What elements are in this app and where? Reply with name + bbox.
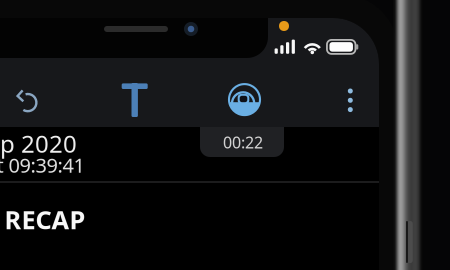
staticText: Sat 09:39:41	[0, 152, 84, 178]
button[interactable]: Undo	[0, 72, 54, 130]
staticText: EVENT RECAP	[0, 203, 85, 236]
button[interactable]: More options	[328, 71, 372, 129]
staticText: Sep 2020	[0, 128, 77, 159]
button[interactable]: Record	[216, 70, 272, 128]
staticText: 00:22	[223, 132, 263, 153]
button[interactable]: Add text	[107, 72, 163, 130]
